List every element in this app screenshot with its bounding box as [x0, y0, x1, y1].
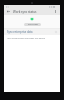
- staticText: Sync now: [28, 23, 38, 26]
- staticText: Your organisation manages this device: [7, 37, 46, 40]
- button[interactable]: Sync now: [24, 23, 41, 26]
- button[interactable]: Back: [6, 9, 11, 14]
- staticText: Sync enterprise data: [7, 30, 33, 34]
- button[interactable]: More options: [53, 9, 58, 14]
- staticText: Work sync status: [13, 10, 37, 14]
- button[interactable]: Sync enterprise data: [4, 29, 60, 35]
